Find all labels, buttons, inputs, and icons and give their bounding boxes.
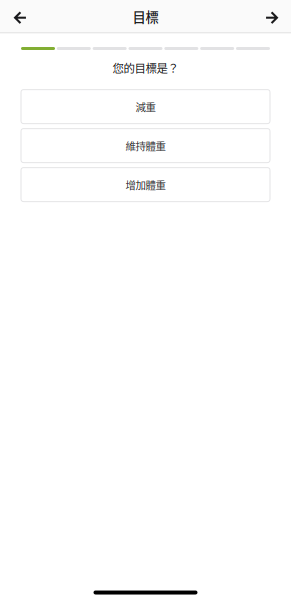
button[interactable]: 維持體重	[21, 129, 270, 163]
staticText: 維持體重	[125, 138, 165, 153]
staticText: 減重	[135, 99, 155, 114]
staticText: 增加體重	[125, 177, 165, 192]
button[interactable]: Back	[6, 0, 34, 32]
button[interactable]: 增加體重	[21, 168, 270, 202]
button[interactable]: 減重	[21, 90, 270, 124]
button[interactable]: Next	[257, 0, 285, 32]
staticText: 您的目標是？	[112, 59, 178, 76]
staticText: 目標	[132, 7, 158, 26]
